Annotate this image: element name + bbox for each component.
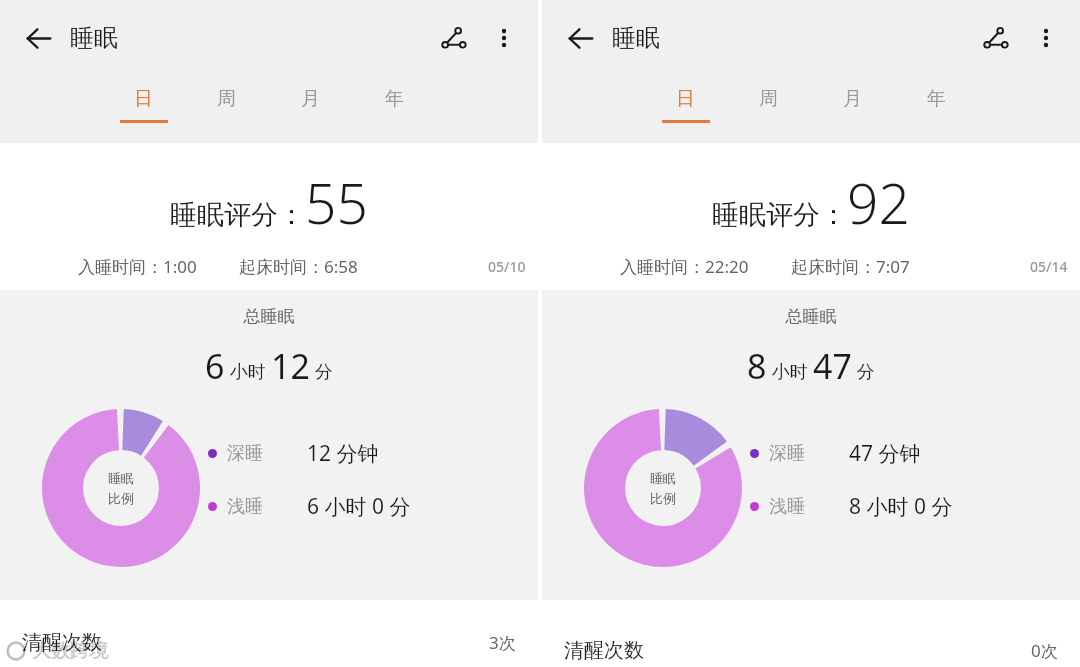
staticText: 05/14 [1030, 257, 1068, 276]
staticText: 浅睡 [227, 495, 263, 518]
button[interactable]: Share [428, 12, 480, 64]
staticText: 05/10 [488, 257, 526, 276]
staticText: 起床时间：6:58 [239, 255, 358, 278]
staticText: 深睡 [769, 442, 805, 465]
staticText: 分 [310, 359, 333, 384]
staticText: 47 [813, 343, 852, 389]
staticText: 小时 [767, 359, 813, 384]
staticText: 55 [305, 165, 368, 240]
button[interactable]: 年 [352, 87, 436, 120]
staticText: 8 [747, 343, 767, 389]
button[interactable]: More options [1022, 14, 1070, 62]
staticText: 8 小时 0 分 [849, 492, 953, 521]
staticText: 清醒次数 [564, 638, 644, 663]
button[interactable]: 周 [727, 87, 810, 120]
button[interactable]: 周 [185, 87, 268, 120]
staticText: 日 [676, 87, 695, 111]
staticText: 月 [301, 87, 320, 111]
staticText: 92 [847, 165, 910, 240]
staticText: 入睡时间：1:00 [78, 255, 197, 278]
button[interactable]: 日 [102, 87, 185, 123]
staticText: 月 [843, 87, 862, 111]
staticText: 周 [759, 87, 778, 111]
staticText: 年 [385, 87, 404, 111]
staticText: 0次 [1031, 639, 1058, 662]
button[interactable]: 日 [644, 87, 727, 123]
staticText: 浅睡 [769, 495, 805, 518]
button[interactable]: More options [480, 14, 528, 62]
staticText: 周 [217, 87, 236, 111]
staticText: 睡眠 [108, 470, 134, 486]
button[interactable]: Share [970, 12, 1022, 64]
staticText: 6 [205, 343, 225, 389]
staticText: 睡眠评分： [170, 198, 305, 232]
staticText: 入睡时间：22:20 [620, 255, 749, 278]
staticText: 起床时间：7:07 [791, 255, 910, 278]
staticText: 总睡眠 [0, 306, 538, 327]
button[interactable]: 月 [268, 87, 352, 120]
staticText: 12 [271, 343, 310, 389]
button[interactable]: 清醒次数 [0, 630, 538, 655]
staticText: 比例 [650, 490, 676, 506]
button[interactable]: 清醒次数 [542, 638, 1080, 663]
staticText: 日 [134, 87, 153, 111]
staticText: 年 [927, 87, 946, 111]
button[interactable]: 月 [810, 87, 894, 120]
staticText: 睡眠 [650, 470, 676, 486]
staticText: 深睡 [227, 442, 263, 465]
staticText: 大数跨境 [32, 639, 108, 663]
staticText: 小时 [225, 359, 271, 384]
staticText: 12 分钟 [307, 439, 379, 468]
staticText: 总睡眠 [542, 306, 1080, 327]
staticText: 睡眠 [612, 23, 660, 53]
staticText: 睡眠评分： [712, 198, 847, 232]
staticText: 47 分钟 [849, 439, 921, 468]
staticText: 睡眠 [70, 23, 118, 53]
staticText: 6 小时 0 分 [307, 492, 411, 521]
staticText: 分 [852, 359, 875, 384]
button[interactable]: 年 [894, 87, 978, 120]
button[interactable]: Back [554, 12, 606, 64]
staticText: 3次 [489, 631, 516, 654]
button[interactable]: Back [12, 12, 64, 64]
staticText: 清醒次数 [22, 630, 102, 655]
staticText: 比例 [108, 490, 134, 506]
